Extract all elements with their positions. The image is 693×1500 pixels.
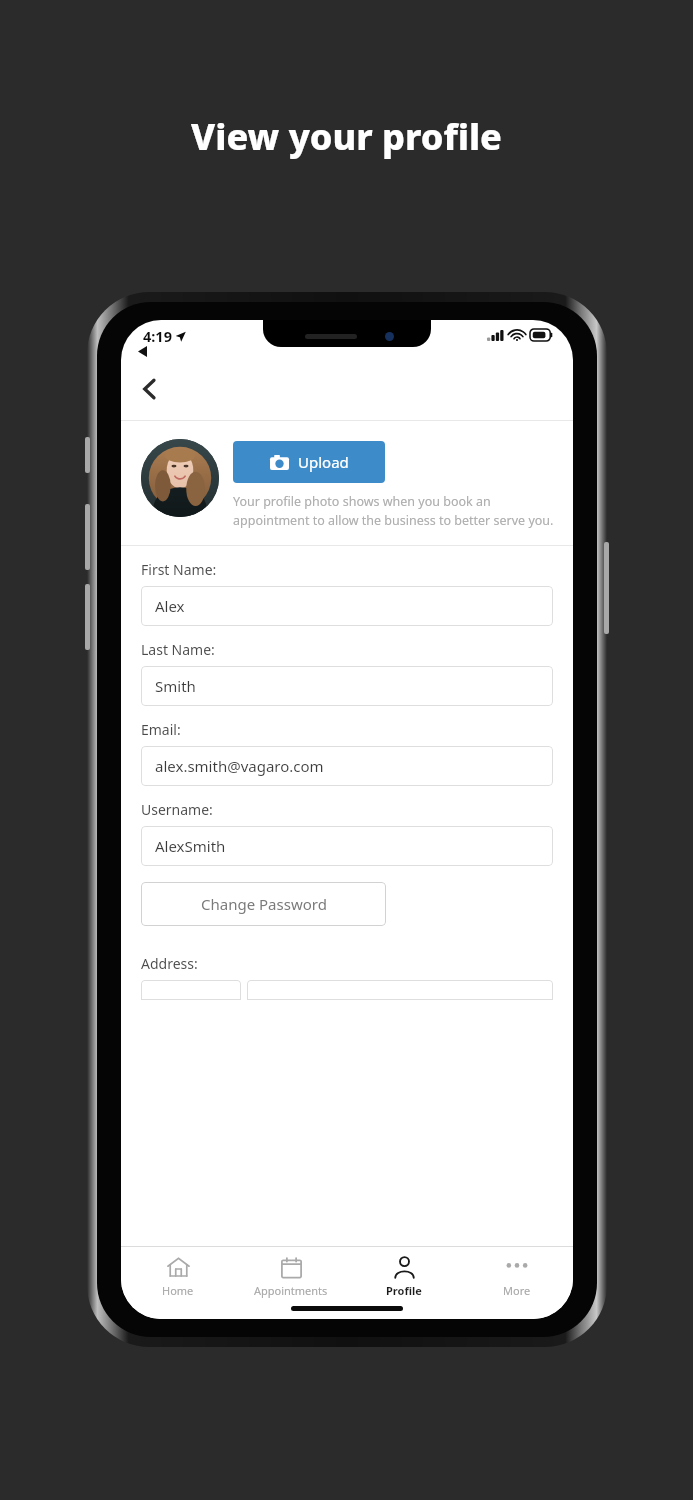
staticText: alex.smith@vagaro.com (155, 756, 324, 776)
staticText: Upload (298, 452, 349, 472)
staticText: Alex (155, 596, 185, 616)
button[interactable]: Upload (233, 441, 385, 483)
button[interactable]: AlexSmith (141, 826, 553, 866)
staticText: Username: (141, 800, 213, 819)
staticText: Last Name: (141, 640, 215, 659)
staticText: Appointments (254, 1283, 328, 1298)
button[interactable]: Profile (347, 1247, 460, 1319)
staticText: Change Password (201, 894, 327, 914)
button[interactable]: alex.smith@vagaro.com (141, 746, 553, 786)
button[interactable]: Country code (141, 980, 241, 1000)
staticText: AlexSmith (155, 836, 226, 856)
button[interactable]: Smith (141, 666, 553, 706)
button[interactable]: More (460, 1247, 573, 1319)
staticText: Home (162, 1283, 194, 1298)
button[interactable]: Change Password (141, 882, 386, 926)
button[interactable]: Street address (247, 980, 553, 1000)
staticText: Email: (141, 720, 181, 739)
staticText: Smith (155, 676, 196, 696)
button[interactable]: Appointments (234, 1247, 347, 1319)
staticText: View your profile (191, 112, 502, 161)
button[interactable]: Alex (141, 586, 553, 626)
staticText: Your profile photo shows when you book a… (233, 493, 559, 529)
staticText: More (503, 1283, 531, 1298)
staticText: Profile (386, 1283, 422, 1298)
button[interactable]: Back (127, 366, 173, 412)
staticText: Address: (141, 954, 198, 973)
button[interactable]: Home (121, 1247, 234, 1319)
button[interactable]: Profile photo (141, 439, 219, 517)
staticText: First Name: (141, 560, 217, 579)
staticText: 4:19 (143, 326, 172, 346)
